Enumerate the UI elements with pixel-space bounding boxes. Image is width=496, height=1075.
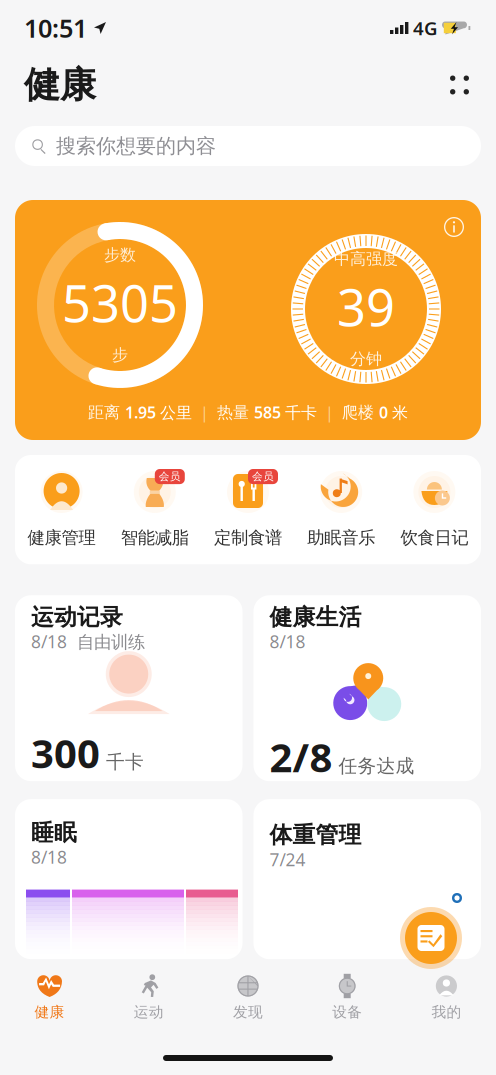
button[interactable]: Record entry	[400, 907, 462, 969]
staticText: 健康管理	[28, 527, 96, 548]
staticText: 设备	[332, 1003, 362, 1021]
staticText: 运动	[134, 1003, 164, 1021]
staticText: 距离	[88, 402, 125, 422]
staticText: 0 米	[379, 402, 408, 423]
button[interactable]: 搜索你想要的内容	[15, 126, 481, 166]
staticText: 千卡	[106, 750, 144, 773]
staticText: 会员	[159, 470, 181, 483]
staticText: 8/18	[31, 846, 67, 869]
staticText: 饮食日记	[400, 527, 468, 548]
staticText: 中高强度	[334, 249, 398, 269]
staticText: 分钟	[350, 349, 382, 369]
staticText: 我的	[431, 1003, 461, 1021]
staticText: 会员	[252, 470, 274, 483]
button[interactable]: 会员	[108, 469, 201, 548]
staticText: |	[317, 402, 342, 423]
button[interactable]: 会员	[201, 469, 295, 548]
button[interactable]: 助眠音乐	[295, 469, 388, 548]
button[interactable]: 体重管理	[253, 799, 481, 959]
staticText: 步数	[104, 245, 136, 265]
button[interactable]: 我的	[397, 967, 496, 1027]
button[interactable]: More	[441, 66, 478, 103]
staticText: |	[192, 402, 217, 423]
staticText: 任务达成	[338, 754, 414, 777]
button[interactable]: 健康	[0, 967, 99, 1027]
staticText: 睡眠	[31, 819, 77, 846]
staticText: 健康	[24, 63, 96, 107]
staticText: 步	[112, 345, 128, 365]
staticText: 搜索你想要的内容	[56, 134, 216, 158]
staticText: 爬楼	[342, 402, 379, 422]
staticText: 585 千卡	[254, 402, 317, 423]
staticText: 发现	[233, 1003, 263, 1021]
staticText: 300	[31, 726, 100, 779]
staticText: 智能减脂	[121, 527, 189, 548]
staticText: 1.95 公里	[125, 402, 192, 423]
staticText: 5305	[62, 269, 178, 336]
button[interactable]: 健康生活	[253, 595, 481, 781]
staticText: 8/18	[269, 630, 305, 653]
button[interactable]: 睡眠	[15, 799, 242, 959]
staticText: 10:51	[24, 11, 87, 45]
button[interactable]: 健康管理	[15, 469, 108, 548]
staticText: 健康	[35, 1003, 65, 1021]
staticText: 健康生活	[269, 603, 361, 631]
button[interactable]: 饮食日记	[388, 469, 481, 548]
button[interactable]: Info	[437, 210, 471, 244]
staticText: 4G	[413, 16, 438, 40]
button[interactable]: 设备	[298, 967, 397, 1027]
staticText: 助眠音乐	[307, 527, 375, 548]
staticText: 2/8	[269, 730, 332, 783]
staticText: 39	[337, 273, 395, 340]
staticText: 定制食谱	[214, 527, 282, 548]
staticText: 体重管理	[269, 821, 361, 849]
staticText: 热量	[217, 402, 254, 422]
button[interactable]: 运动记录	[15, 595, 242, 781]
staticText: 7/24	[269, 848, 305, 871]
staticText: 8/18 自由训练	[31, 630, 145, 653]
staticText: 运动记录	[31, 603, 123, 631]
button[interactable]: 发现	[198, 967, 298, 1027]
button[interactable]: 运动	[99, 967, 198, 1027]
